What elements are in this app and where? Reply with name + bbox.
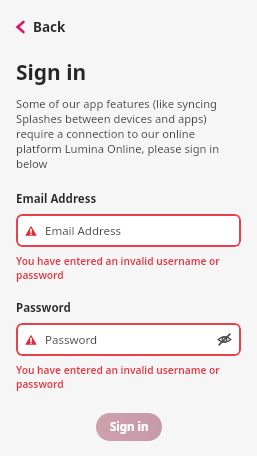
button[interactable]: Sign in (96, 413, 162, 441)
staticText: You have entered an invalid username or … (16, 363, 241, 391)
button[interactable]: Back (0, 14, 78, 40)
staticText: Back (33, 18, 66, 36)
staticText: Sign in (16, 58, 87, 87)
staticText: Password (45, 332, 98, 348)
staticText: Email Address (45, 223, 122, 239)
button[interactable]: Email Address (16, 214, 241, 247)
staticText: You have entered an invalid username or … (16, 254, 241, 282)
other: Show password (217, 332, 232, 347)
staticText: Email Address (16, 191, 97, 207)
button[interactable]: Password (16, 323, 241, 356)
other: Back (16, 21, 25, 33)
staticText: Sign in (110, 419, 149, 435)
staticText: Some of our app features (like syncing S… (16, 96, 241, 171)
staticText: Password (16, 300, 71, 316)
